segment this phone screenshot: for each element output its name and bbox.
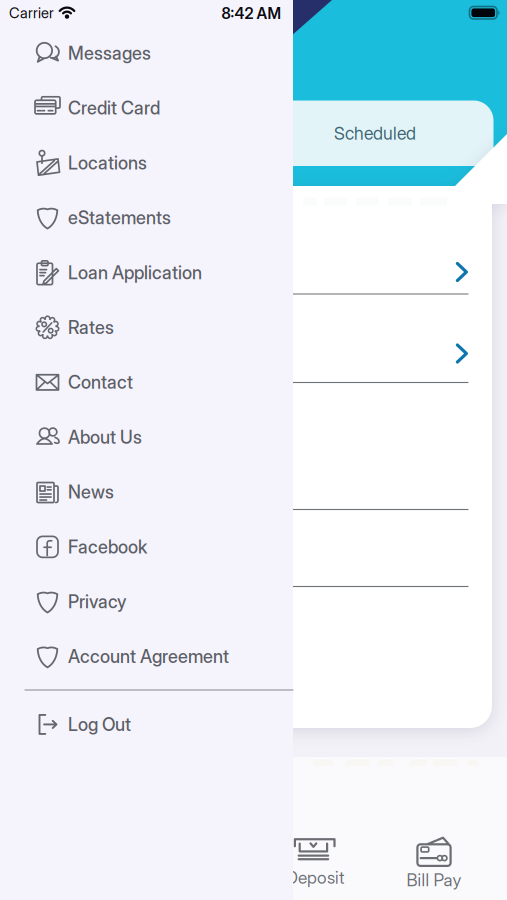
button[interactable]: Log Out	[0, 697, 293, 752]
button[interactable]: Scheduled transfer details	[293, 294, 493, 382]
button[interactable]: Credit Card	[0, 81, 293, 136]
staticText: Carrier	[9, 4, 54, 22]
staticText: Privacy	[68, 591, 126, 613]
staticText: Contact	[68, 371, 133, 393]
staticText: Log Out	[68, 713, 131, 735]
staticText: Bill Pay	[406, 869, 461, 890]
button[interactable]: Account Agreement	[0, 629, 293, 684]
staticText: Scheduled	[334, 123, 416, 144]
button[interactable]: eStatements	[0, 190, 293, 245]
staticText: Rates	[68, 317, 114, 338]
staticText: Deposit	[286, 867, 344, 888]
staticText: News	[68, 481, 114, 503]
button[interactable]: Scheduled transfer details	[293, 206, 493, 294]
staticText: Locations	[68, 152, 147, 174]
button[interactable]: Messages	[0, 26, 293, 81]
button[interactable]: Loan Application	[0, 245, 293, 300]
staticText: Messages	[68, 42, 151, 64]
staticText: About Us	[68, 426, 142, 448]
button[interactable]: News	[0, 465, 293, 519]
button[interactable]: Deposit	[265, 832, 365, 894]
button[interactable]: Privacy	[0, 574, 293, 629]
staticText: Loan Application	[68, 262, 202, 283]
staticText: 8:42 AM	[221, 4, 281, 23]
button[interactable]: Locations	[0, 135, 293, 190]
button[interactable]: About Us	[0, 410, 293, 465]
button[interactable]: Bill Pay	[384, 832, 484, 894]
staticText: Credit Card	[68, 97, 160, 119]
staticText: eStatements	[68, 207, 171, 229]
staticText: Account Agreement	[68, 646, 229, 667]
button[interactable]: Scheduled	[0, 100, 493, 166]
staticText: Facebook	[68, 536, 147, 558]
button[interactable]: Rates	[0, 300, 293, 355]
button[interactable]: Facebook	[0, 519, 293, 574]
button[interactable]: Contact	[0, 355, 293, 410]
